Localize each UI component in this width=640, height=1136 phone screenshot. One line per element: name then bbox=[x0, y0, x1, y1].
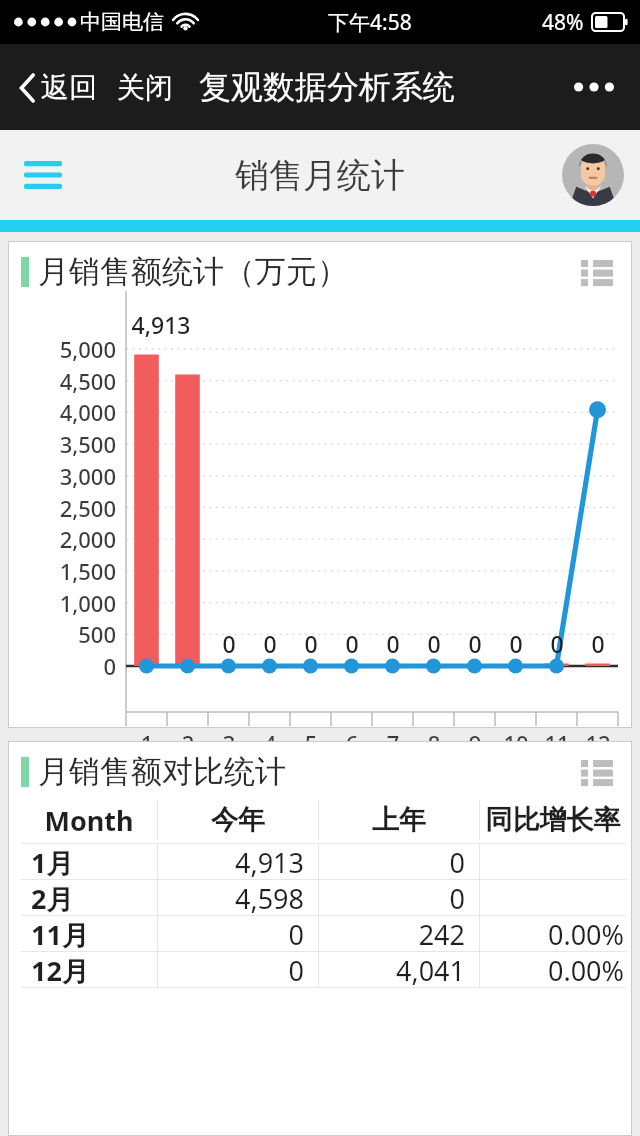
staticText: 5,000 bbox=[16, 334, 116, 364]
staticText: 销售月统计 bbox=[235, 154, 405, 197]
button[interactable]: Profile bbox=[562, 144, 624, 206]
staticText: 6 bbox=[334, 728, 370, 758]
button[interactable]: Options bbox=[577, 756, 617, 788]
staticText: 0 bbox=[297, 628, 325, 659]
staticText: 0 bbox=[16, 651, 116, 681]
staticText: 11月 bbox=[31, 916, 157, 951]
staticText: 11 bbox=[539, 728, 575, 758]
staticText: 0 bbox=[543, 628, 571, 659]
staticText: 1,500 bbox=[16, 556, 116, 586]
staticText: 2,500 bbox=[16, 493, 116, 523]
button[interactable]: 返回 bbox=[14, 62, 101, 113]
staticText: 3,500 bbox=[16, 429, 116, 459]
button[interactable]: 2月 bbox=[21, 880, 626, 915]
staticText: 5 bbox=[293, 728, 329, 758]
staticText: 同比增长率 bbox=[480, 803, 626, 837]
staticText: 4,913 bbox=[126, 309, 196, 340]
staticText: 0 bbox=[338, 628, 366, 659]
staticText: 1月 bbox=[31, 844, 157, 879]
button[interactable]: 11月 bbox=[21, 916, 626, 951]
staticText: 上年 bbox=[319, 803, 479, 837]
staticText: 0 bbox=[256, 628, 284, 659]
staticText: 4,913 bbox=[158, 844, 304, 879]
staticText: 关闭 bbox=[117, 70, 173, 105]
staticText: 0 bbox=[502, 628, 530, 659]
staticText: 2,000 bbox=[16, 524, 116, 554]
staticText: 返回 bbox=[41, 70, 97, 105]
staticText: 复观数据分析系统 bbox=[199, 67, 455, 107]
staticText: Month bbox=[21, 802, 157, 839]
staticText: 月销售额统计（万元） bbox=[38, 252, 348, 291]
staticText: 7 bbox=[375, 728, 411, 758]
button[interactable]: 1月 bbox=[21, 844, 626, 879]
staticText: 8 bbox=[416, 728, 452, 758]
staticText: 12月 bbox=[31, 952, 157, 987]
staticText: 4 bbox=[252, 728, 288, 758]
staticText: 0 bbox=[584, 628, 612, 659]
staticText: 2 bbox=[170, 728, 206, 758]
staticText: 4,041 bbox=[319, 952, 465, 987]
staticText: 3,000 bbox=[16, 461, 116, 491]
staticText: 0 bbox=[319, 844, 465, 879]
staticText: 242 bbox=[319, 916, 465, 951]
button[interactable]: Menu bbox=[16, 153, 70, 197]
staticText: 0 bbox=[379, 628, 407, 659]
staticText: 500 bbox=[16, 619, 116, 649]
button[interactable]: Options bbox=[577, 256, 617, 288]
staticText: 今年 bbox=[158, 803, 318, 837]
button[interactable]: 12月 bbox=[21, 952, 626, 987]
staticText: 0 bbox=[461, 628, 489, 659]
staticText: 0 bbox=[319, 880, 465, 915]
staticText: 0.00% bbox=[480, 952, 624, 987]
staticText: 0 bbox=[158, 952, 304, 987]
staticText: 0 bbox=[420, 628, 448, 659]
staticText: 下午4:58 bbox=[328, 8, 412, 37]
staticText: 0.00% bbox=[480, 916, 624, 951]
staticText: 1,000 bbox=[16, 588, 116, 618]
button[interactable]: 关闭 bbox=[113, 62, 177, 113]
staticText: 10 bbox=[498, 728, 534, 758]
staticText: 12 bbox=[580, 728, 616, 758]
staticText: 48% bbox=[542, 8, 584, 37]
staticText: 4,000 bbox=[16, 397, 116, 427]
staticText: 0 bbox=[158, 916, 304, 951]
staticText: 4,598 bbox=[158, 880, 304, 915]
staticText: 中国电信 bbox=[80, 9, 164, 35]
staticText: 1 bbox=[129, 728, 165, 758]
staticText: 9 bbox=[457, 728, 493, 758]
button[interactable]: More options bbox=[566, 74, 622, 100]
staticText: 月销售额对比统计 bbox=[38, 752, 286, 791]
staticText: 3 bbox=[211, 728, 247, 758]
staticText: 2月 bbox=[31, 880, 157, 915]
staticText: 0 bbox=[215, 628, 243, 659]
staticText: 4,500 bbox=[16, 366, 116, 396]
